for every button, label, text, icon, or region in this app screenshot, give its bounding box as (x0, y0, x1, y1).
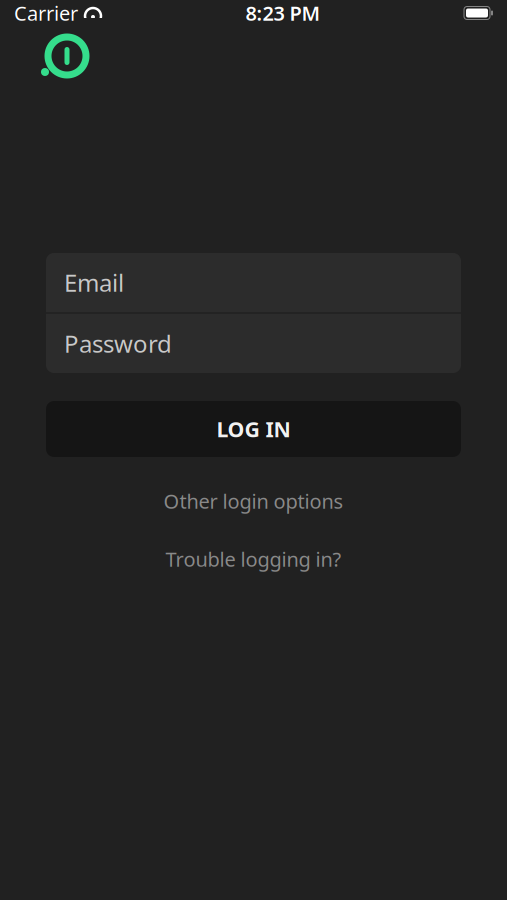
button[interactable]: Other login options (46, 490, 461, 512)
staticText: Password (64, 328, 172, 359)
staticText: LOG IN (216, 415, 290, 443)
button[interactable]: LOG IN (46, 401, 461, 457)
button[interactable]: Trouble logging in? (46, 548, 461, 570)
staticText: Carrier (14, 0, 78, 26)
staticText: Email (64, 267, 124, 298)
staticText: Trouble logging in? (165, 546, 341, 572)
staticText: Other login options (163, 488, 343, 514)
button[interactable]: Password (46, 314, 461, 373)
button[interactable]: Email (46, 253, 461, 312)
staticText: 8:23 PM (245, 0, 320, 26)
